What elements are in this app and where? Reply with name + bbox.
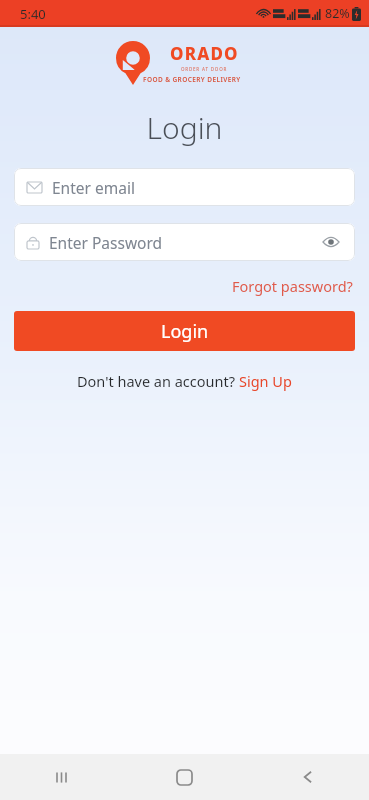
button[interactable]: Home: [123, 754, 246, 800]
staticText: Login: [0, 107, 369, 148]
staticText: Enter email: [52, 177, 135, 198]
button[interactable]: Show password: [318, 229, 344, 255]
button[interactable]: Recents: [0, 754, 123, 800]
staticText: Enter Password: [49, 232, 163, 253]
staticText: ORADO: [170, 42, 239, 65]
button[interactable]: Forgot password?: [230, 273, 355, 299]
staticText: Don't have an account?: [77, 371, 239, 391]
staticText: FOOD & GROCERY DELIVERY: [143, 75, 241, 84]
staticText: 5:40: [20, 5, 46, 23]
button[interactable]: Enter email: [14, 168, 355, 206]
staticText: ORDER AT DOOR: [181, 66, 228, 72]
button[interactable]: Enter Password: [14, 223, 355, 261]
button[interactable]: Login: [14, 311, 355, 351]
staticText: Login: [161, 319, 209, 344]
button[interactable]: Sign Up: [239, 369, 292, 393]
staticText: 82%: [325, 5, 350, 22]
button[interactable]: Back: [246, 754, 369, 800]
